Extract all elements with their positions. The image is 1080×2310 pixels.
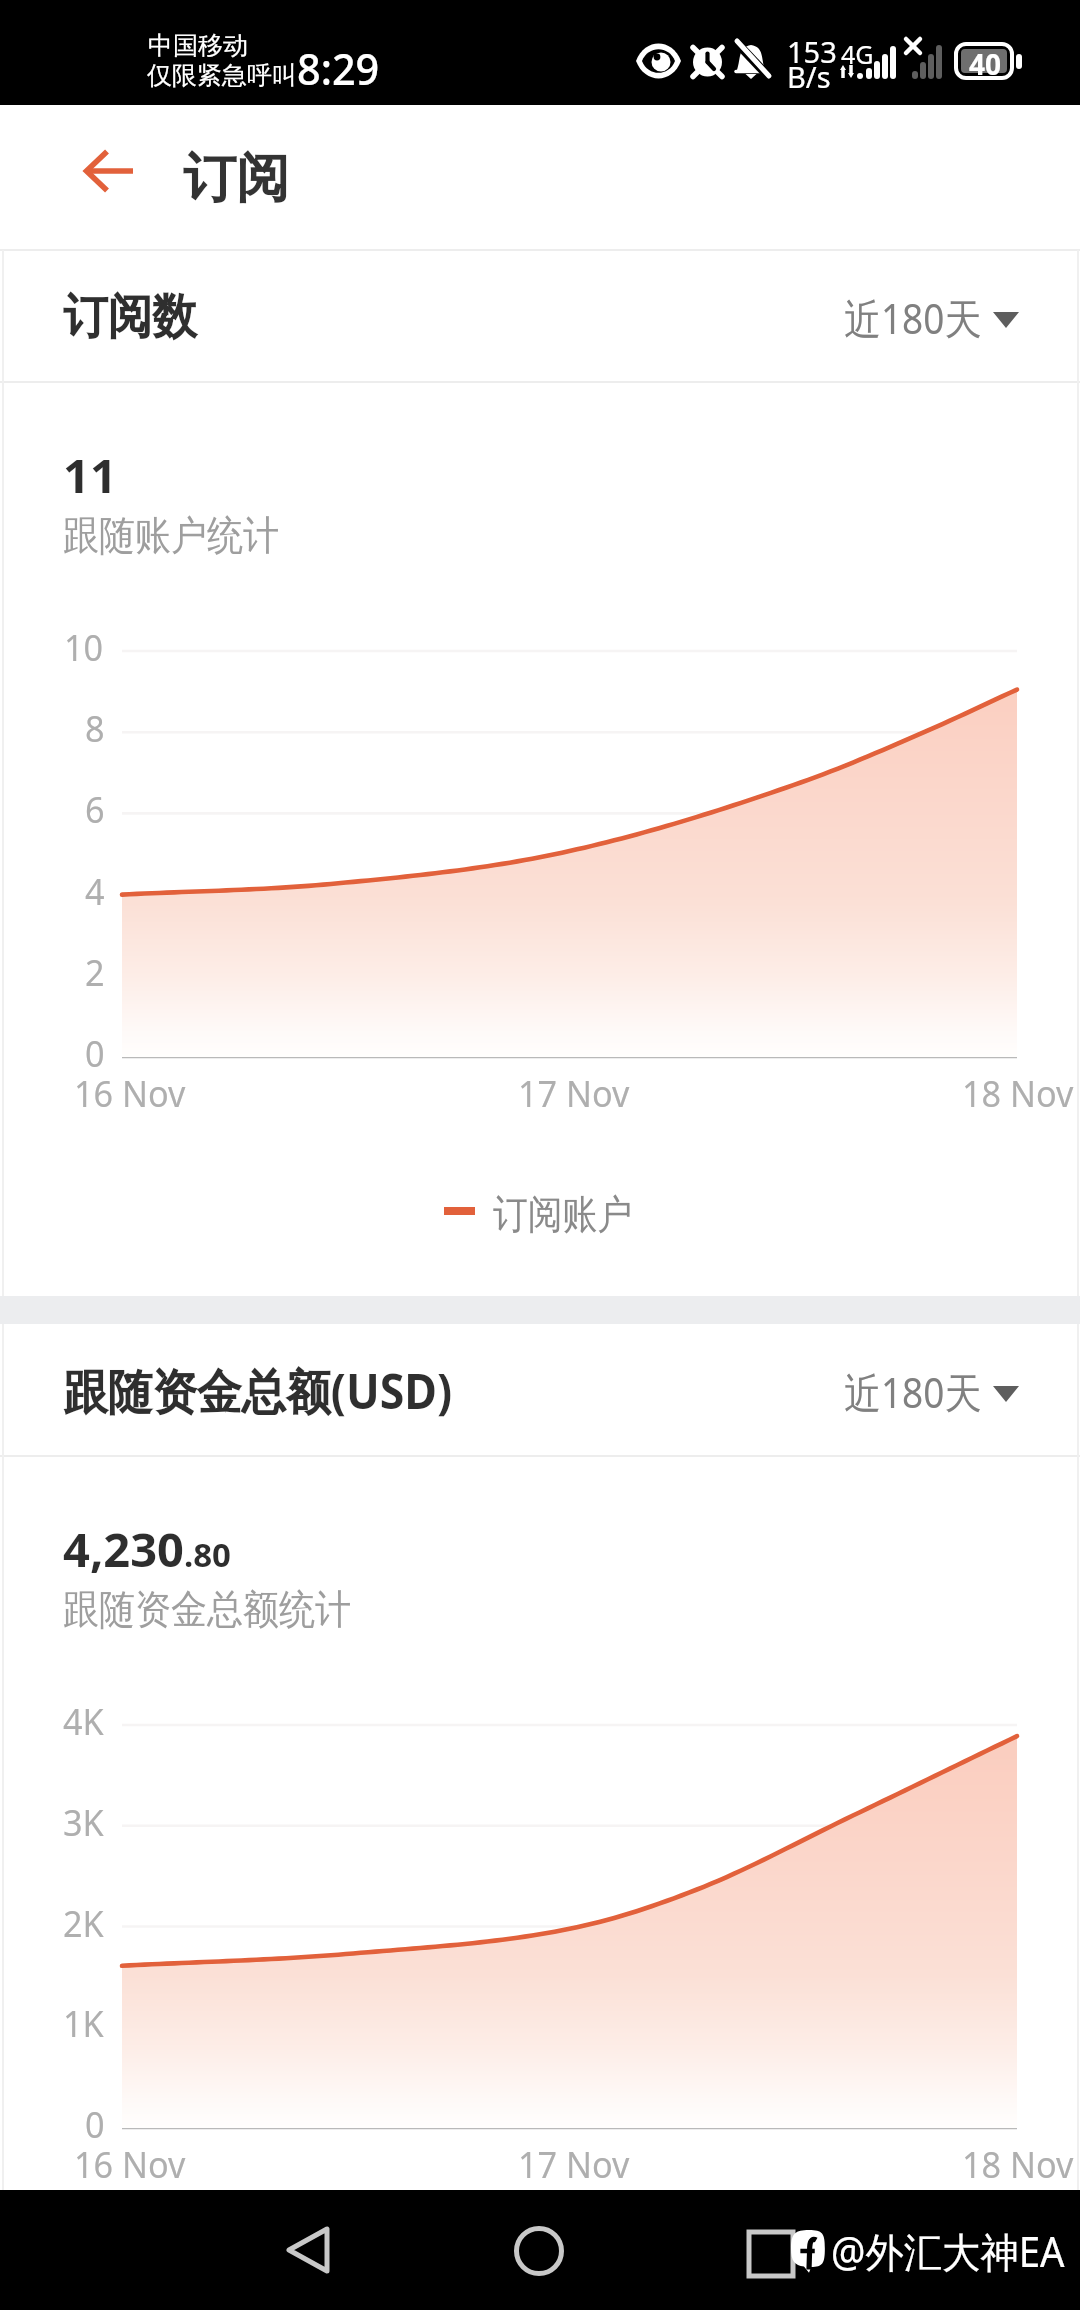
staticText: 18 Nov [962,2140,1074,2189]
staticText: 17 Nov [518,2140,630,2189]
button[interactable]: Back [62,127,154,223]
button[interactable]: 近180天 [836,271,1026,351]
button[interactable]: 近180天 [836,1345,1026,1425]
staticText: 6 [85,785,105,834]
staticText: 4G [841,37,874,71]
staticText: 订阅数 [63,287,197,347]
staticText: 8:29 [297,38,380,98]
staticText: 2 [85,948,105,997]
button[interactable]: Recent apps [727,2210,815,2298]
staticText: 2K [63,1899,104,1948]
staticText: 0 [85,1029,105,1078]
staticText: 4K [63,1697,104,1746]
staticText: 4,230.80 [63,1517,231,1581]
staticText: 近180天 [844,289,982,346]
button[interactable]: 订阅账户 [430,1186,645,1242]
staticText: 跟随账户统计 [63,510,279,560]
staticText: 10 [64,623,104,672]
staticText: 订阅 [183,145,289,212]
button[interactable]: Back [263,2205,353,2295]
staticText: 17 Nov [518,1069,630,1118]
staticText: 1K [63,1999,104,2048]
staticText: 订阅账户 [493,1189,632,1239]
staticText: 4 [85,867,105,916]
staticText: 153 [787,32,837,71]
staticText: 16 Nov [74,2140,186,2189]
staticText: 仅限紧急呼叫 [147,60,297,91]
staticText: 18 Nov [962,1069,1074,1118]
staticText: 8 [85,704,105,753]
staticText: 近180天 [844,1363,982,1420]
staticText: 中国移动 [148,30,248,61]
staticText: 11 [63,443,117,507]
staticText: 0 [85,2100,105,2149]
staticText: B/s [787,57,831,96]
staticText: 3K [63,1798,104,1847]
button[interactable]: Home [494,2206,584,2296]
staticText: 跟随资金总额统计 [63,1584,351,1634]
staticText: 40 [969,45,1002,83]
staticText: 16 Nov [74,1069,186,1118]
staticText: 跟随资金总额(USD) [63,1358,453,1424]
staticText: @外汇大神EA [831,2223,1065,2279]
